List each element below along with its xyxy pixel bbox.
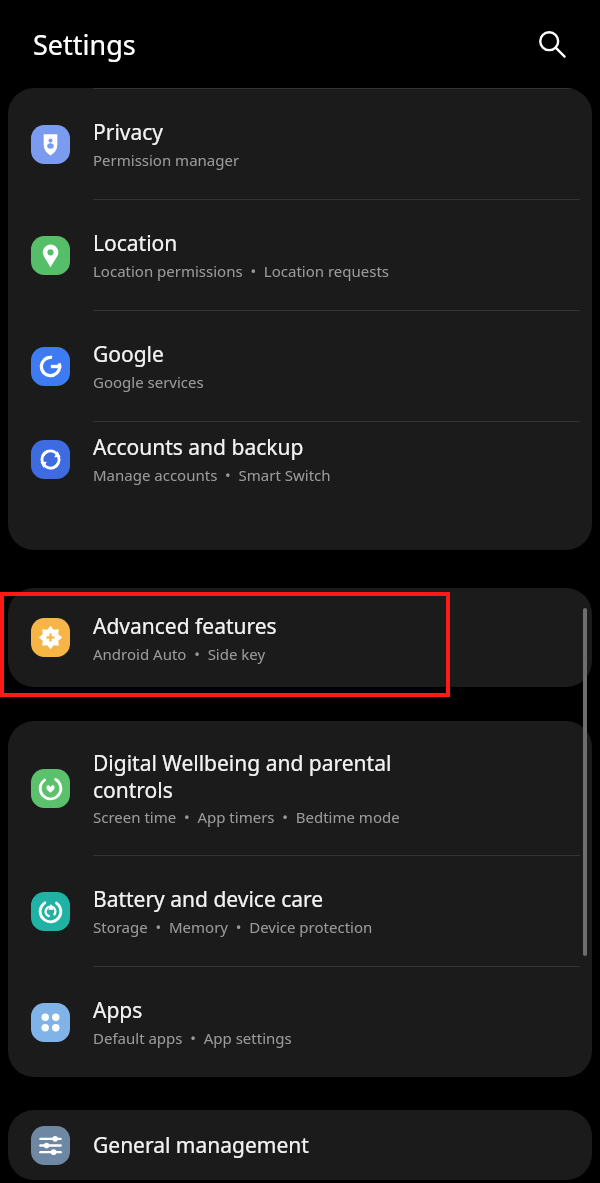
staticText: General management <box>93 1131 309 1160</box>
button[interactable]: Battery and device care <box>8 856 592 966</box>
staticText: Google services <box>93 372 204 392</box>
staticText: Digital Wellbeing and parental controls <box>93 749 392 804</box>
staticText: Apps <box>93 996 143 1025</box>
button[interactable]: Advanced features <box>8 588 592 687</box>
staticText: Location permissions • Location requests <box>93 261 390 281</box>
staticText: Google <box>93 340 164 369</box>
button[interactable]: Privacy <box>8 89 592 199</box>
staticText: Privacy <box>93 118 164 147</box>
staticText: Accounts and backup <box>93 433 304 462</box>
button[interactable]: Search <box>530 22 574 66</box>
staticText: Screen time • App timers • Bedtime mode <box>93 807 400 827</box>
staticText: Manage accounts • Smart Switch <box>93 465 331 485</box>
button[interactable]: Google <box>8 311 592 421</box>
staticText: Battery and device care <box>93 885 324 914</box>
button[interactable]: Location <box>8 200 592 310</box>
staticText: Default apps • App settings <box>93 1028 292 1048</box>
staticText: Storage • Memory • Device protection <box>93 917 373 937</box>
button[interactable]: General management <box>8 1110 592 1180</box>
staticText: Settings <box>33 26 136 63</box>
staticText: Location <box>93 229 178 258</box>
button[interactable]: Apps <box>8 967 592 1077</box>
staticText: Android Auto • Side key <box>93 644 266 664</box>
staticText: Advanced features <box>93 612 277 641</box>
button[interactable]: Accounts and backup <box>8 422 592 496</box>
button[interactable]: Digital Wellbeing and parental controls <box>8 721 592 855</box>
staticText: Permission manager <box>93 150 240 170</box>
